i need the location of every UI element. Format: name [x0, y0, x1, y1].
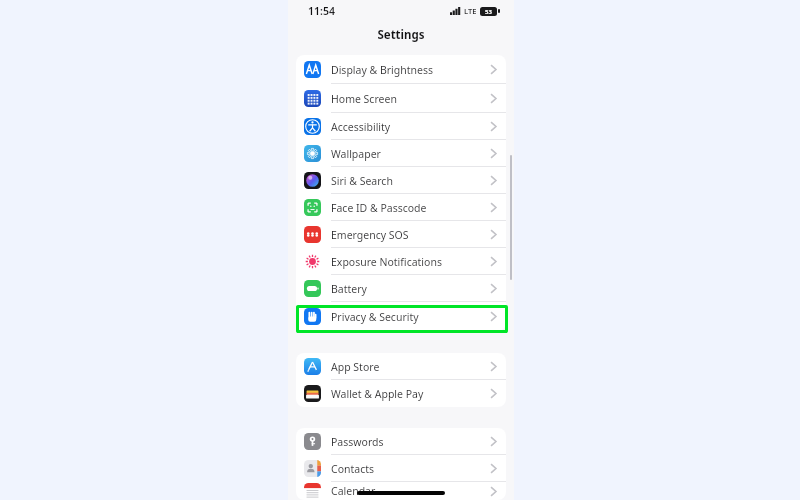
staticText: Home Screen: [331, 92, 397, 106]
button[interactable]: Privacy & Security: [296, 302, 506, 331]
staticText: Passwords: [331, 435, 384, 449]
button[interactable]: App Store: [296, 353, 506, 380]
button[interactable]: Battery: [296, 275, 506, 302]
button[interactable]: Exposure Notifications: [296, 248, 506, 275]
staticText: 53: [485, 8, 492, 16]
staticText: 11:54: [308, 4, 335, 18]
button[interactable]: Wallpaper: [296, 140, 506, 167]
button[interactable]: Privacy & Security highlighted: [296, 305, 508, 333]
staticText: Calendar: [331, 484, 376, 498]
button[interactable]: Calendar: [296, 482, 506, 500]
staticText: Exposure Notifications: [331, 255, 442, 269]
button[interactable]: Emergency SOS: [296, 221, 506, 248]
button[interactable]: Display & Brightness: [296, 55, 506, 84]
button[interactable]: Siri & Search: [296, 167, 506, 194]
button[interactable]: Contacts: [296, 455, 506, 482]
staticText: Wallpaper: [331, 147, 381, 161]
staticText: Contacts: [331, 462, 375, 476]
button[interactable]: Wallet & Apple Pay: [296, 380, 506, 407]
button[interactable]: Accessibility: [296, 113, 506, 140]
button[interactable]: Passwords: [296, 428, 506, 455]
staticText: App Store: [331, 360, 380, 374]
staticText: Settings: [377, 27, 425, 43]
staticText: LTE: [464, 6, 477, 16]
staticText: Siri & Search: [331, 174, 393, 188]
button[interactable]: Face ID & Passcode: [296, 194, 506, 221]
staticText: Accessibility: [331, 120, 391, 134]
staticText: Display & Brightness: [331, 63, 434, 77]
staticText: Face ID & Passcode: [331, 201, 427, 215]
button[interactable]: Home Screen: [296, 84, 506, 113]
staticText: Battery: [331, 282, 367, 296]
staticText: Privacy & Security: [331, 310, 419, 324]
staticText: Emergency SOS: [331, 228, 409, 242]
staticText: Wallet & Apple Pay: [331, 387, 424, 401]
